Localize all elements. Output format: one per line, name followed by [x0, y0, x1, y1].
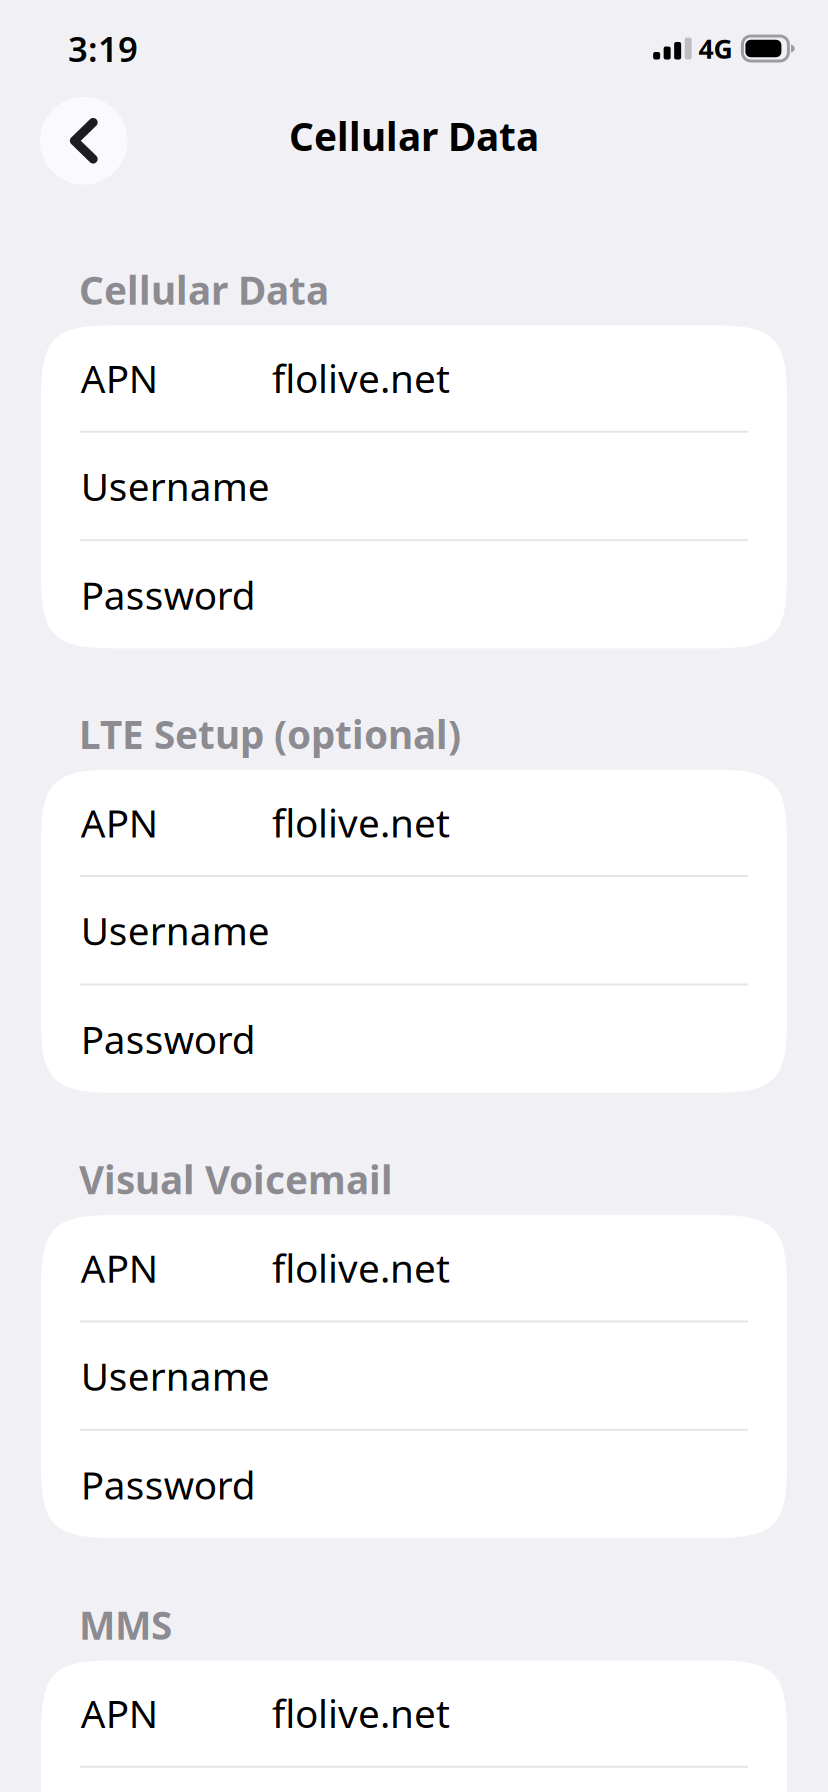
- button[interactable]: APN: [41, 1660, 787, 1766]
- staticText: Username: [81, 1350, 270, 1401]
- staticText: flolive.net: [272, 1242, 450, 1293]
- staticText: Username: [81, 460, 270, 512]
- button[interactable]: Password: [41, 541, 787, 648]
- button[interactable]: APN: [41, 325, 787, 431]
- staticText: Cellular Data: [79, 264, 329, 315]
- button[interactable]: APN: [41, 1215, 787, 1320]
- staticText: Password: [81, 569, 256, 620]
- button[interactable]: Username: [41, 877, 787, 983]
- staticText: APN: [81, 352, 158, 404]
- staticText: Password: [81, 1459, 256, 1510]
- staticText: flolive.net: [272, 352, 450, 404]
- button[interactable]: Password: [41, 985, 787, 1093]
- staticText: Cellular Data: [289, 110, 539, 162]
- staticText: Username: [81, 905, 270, 956]
- staticText: MMS: [79, 1599, 172, 1650]
- staticText: 4G: [698, 31, 732, 66]
- staticText: Password: [81, 1013, 256, 1065]
- staticText: 3:19: [68, 25, 138, 71]
- button[interactable]: Username: [41, 1322, 787, 1429]
- staticText: Visual Voicemail: [79, 1154, 393, 1205]
- button[interactable]: APN: [41, 770, 787, 875]
- button[interactable]: Password: [41, 1431, 787, 1538]
- staticText: flolive.net: [272, 797, 450, 848]
- button[interactable]: Username: [41, 433, 787, 539]
- staticText: APN: [81, 1242, 158, 1293]
- staticText: APN: [81, 797, 158, 848]
- button[interactable]: Back: [40, 97, 127, 184]
- staticText: LTE Setup (optional): [79, 708, 461, 760]
- staticText: flolive.net: [272, 1687, 450, 1739]
- staticText: APN: [81, 1687, 158, 1739]
